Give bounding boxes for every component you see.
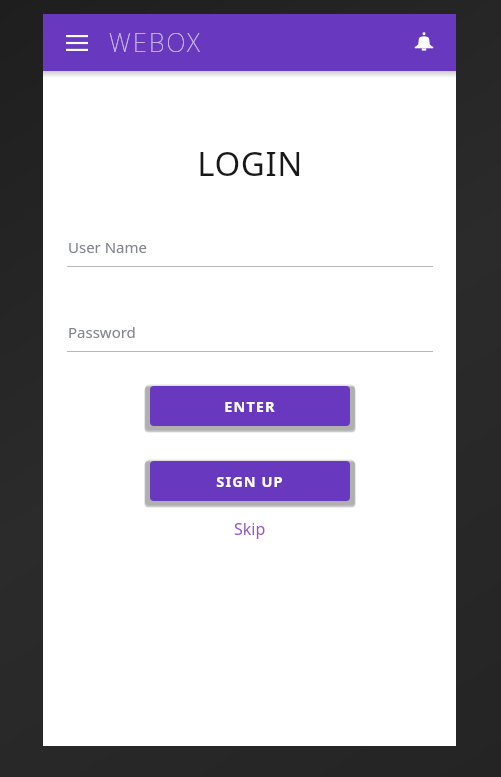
staticText: Password — [68, 322, 136, 342]
button[interactable]: Open navigation menu — [53, 19, 101, 67]
staticText: LOGIN — [197, 141, 303, 186]
button[interactable]: ENTER — [150, 386, 350, 426]
staticText: WEBOX — [109, 25, 202, 59]
staticText: Skip — [234, 518, 266, 540]
button[interactable]: SIGN UP — [150, 461, 350, 501]
staticText: User Name — [68, 237, 148, 257]
button[interactable]: Password — [67, 322, 433, 352]
staticText: ENTER — [224, 396, 276, 416]
staticText: SIGN UP — [216, 471, 284, 491]
button[interactable]: Skip — [222, 514, 278, 544]
button[interactable]: User Name — [67, 237, 433, 267]
button[interactable]: Notifications — [400, 19, 448, 67]
